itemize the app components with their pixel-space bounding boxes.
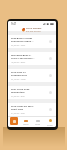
staticText: 32,450 mi · Silver [11,44,26,46]
staticText: AUTO MARKET [26,27,42,30]
button[interactable]: Mercedes-Benz C-Class C 300 4MATIC Sedan [8,52,56,65]
staticText: buy and sell cars [26,30,41,32]
staticText: 27,305 mi · Blue [11,95,25,97]
button[interactable]: 2021 Volvo XC60 Momentum [8,86,56,99]
button[interactable]: More info [49,40,52,43]
staticText: 44,120 mi · White [11,78,26,80]
staticText: Search [23,123,29,125]
button[interactable]: More info [49,74,52,77]
button[interactable]: More info [49,91,52,94]
staticText: 18,900 mi · Black [11,61,26,63]
button[interactable]: 2018 Lexus RX 350 F Sport AWD [8,103,56,116]
staticText: 9:41 [11,22,17,26]
staticText: 2019 Audi A4 Premium Plus [11,71,35,77]
button[interactable]: Search [20,117,32,125]
button[interactable]: 2019 Audi A4 Premium Plus [8,69,56,82]
button[interactable]: More info [49,57,52,60]
staticText: 2021 Volvo XC60 Momentum [11,88,35,94]
staticText: 2020 BMW 3 Series 330i xDrive Sedan AWD [11,37,35,43]
button[interactable]: More info [49,108,52,111]
button[interactable]: Listings [8,117,20,125]
staticText: 51,780 mi · Grey [11,112,25,114]
staticText: 2018 Lexus RX 350 F Sport AWD [11,105,35,111]
staticText: Mercedes-Benz C-Class C 300 4MATIC Sedan [11,54,35,60]
button[interactable]: Profile [44,117,56,126]
staticText: Profile [47,124,53,126]
button[interactable]: Saved [32,117,44,125]
staticText: Saved [35,123,41,125]
button[interactable]: AUTO MARKET [8,27,56,32]
button[interactable]: 2020 BMW 3 Series 330i xDrive Sedan AWD [8,35,56,48]
